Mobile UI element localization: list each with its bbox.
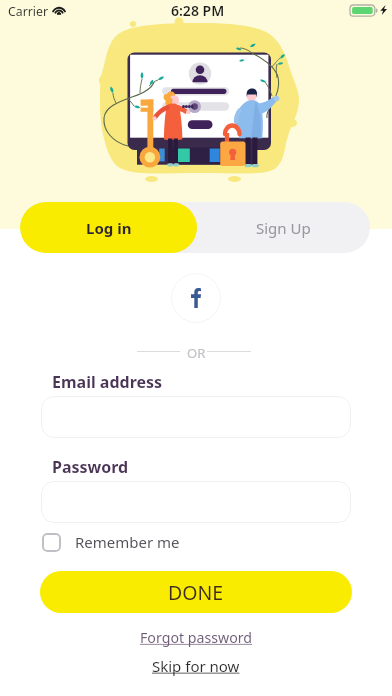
button[interactable]: Forgot password xyxy=(140,628,253,647)
button[interactable]: Email address input xyxy=(41,396,351,438)
button[interactable]: Skip for now xyxy=(152,656,240,676)
staticText: Forgot password xyxy=(140,628,253,647)
button[interactable]: Sign in with Facebook xyxy=(171,273,221,323)
staticText: Log in xyxy=(86,218,132,238)
staticText: Sign Up xyxy=(256,218,311,238)
button[interactable]: Log in xyxy=(20,202,197,253)
staticText: DONE xyxy=(168,579,224,606)
button[interactable]: DONE xyxy=(40,571,352,613)
staticText: Carrier xyxy=(8,3,49,20)
staticText: Password xyxy=(52,456,129,478)
staticText: Email address xyxy=(52,371,163,393)
staticText: 6:28 PM xyxy=(171,1,225,20)
staticText: OR xyxy=(187,344,206,362)
button[interactable]: Remember me xyxy=(42,530,180,554)
button[interactable]: Password input xyxy=(41,481,351,523)
button[interactable]: Sign Up xyxy=(195,202,370,253)
staticText: Skip for now xyxy=(152,656,240,676)
staticText: Remember me xyxy=(75,532,180,552)
